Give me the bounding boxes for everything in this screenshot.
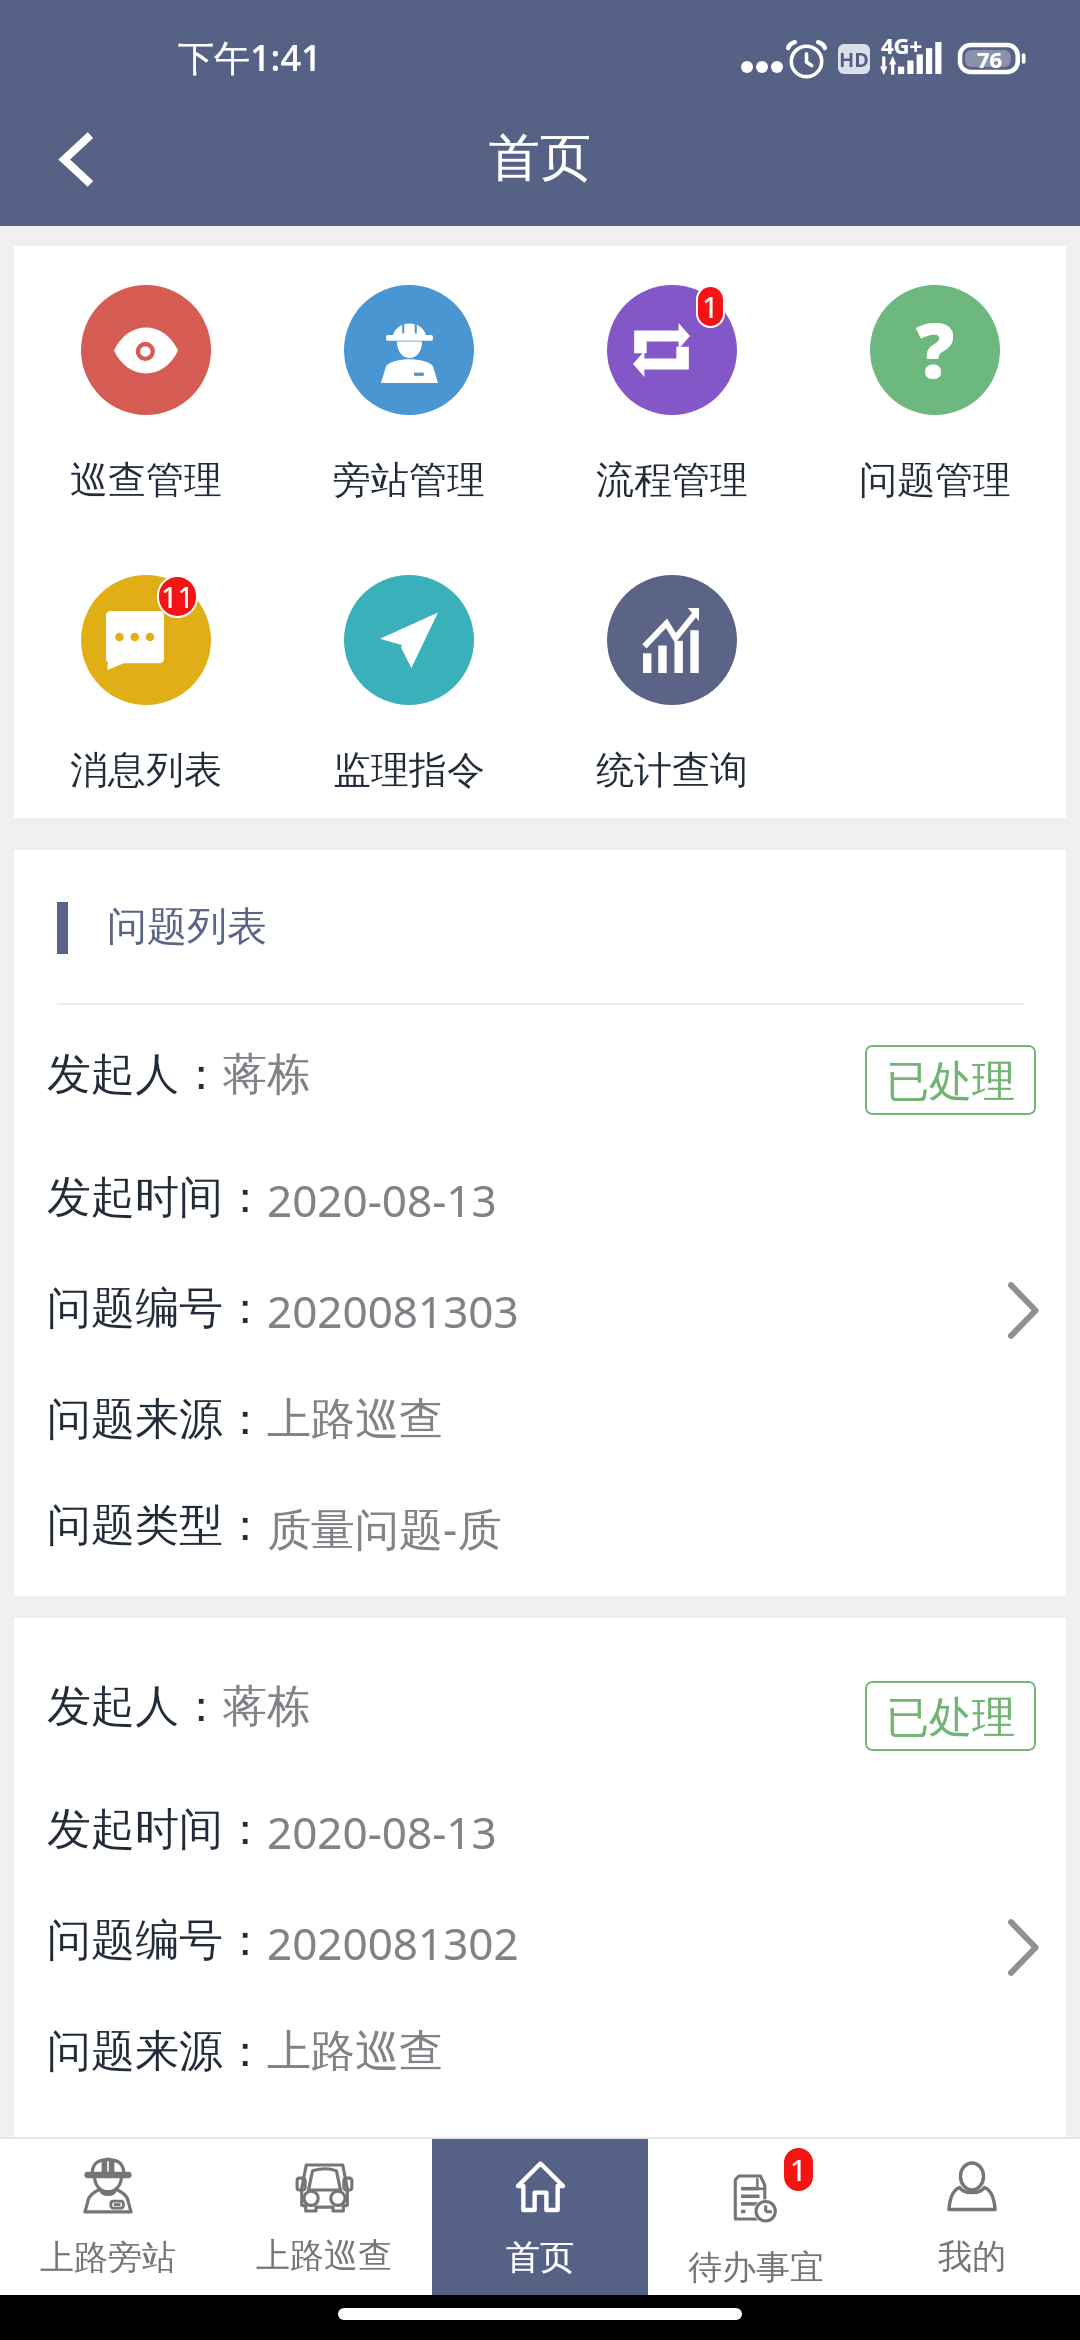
- staticText: 2020081303: [267, 1281, 519, 1341]
- button[interactable]: 上路旁站: [0, 2139, 216, 2295]
- button[interactable]: Back: [31, 113, 123, 205]
- staticText: ?: [916, 297, 955, 401]
- staticText: 发起时间：: [47, 1802, 267, 1857]
- staticText: 蒋栋: [223, 1679, 311, 1734]
- staticText: 发起时间：: [47, 1170, 267, 1225]
- staticText: 2020081302: [267, 1913, 519, 1973]
- button[interactable]: 首页: [432, 2139, 648, 2295]
- staticText: 消息列表: [70, 746, 222, 794]
- staticText: 1: [790, 2150, 807, 2189]
- staticText: 上路巡查: [267, 2024, 443, 2079]
- staticText: 11: [161, 577, 195, 616]
- button[interactable]: 已处理: [865, 1681, 1036, 1751]
- staticText: 2020-08-13: [267, 1170, 497, 1230]
- staticText: 问题列表: [107, 901, 267, 951]
- button[interactable]: 我的: [864, 2139, 1080, 2295]
- staticText: 问题类型：: [47, 1498, 267, 1553]
- staticText: 问题编号：: [47, 1281, 267, 1336]
- button[interactable]: ?: [803, 285, 1066, 504]
- staticText: 监理指令: [333, 746, 485, 794]
- staticText: 旁站管理: [333, 456, 485, 504]
- staticText: 问题管理: [859, 456, 1011, 504]
- staticText: 统计查询: [596, 746, 748, 794]
- staticText: 1: [702, 287, 719, 326]
- staticText: HD: [838, 46, 870, 73]
- staticText: 我的: [938, 2235, 1006, 2278]
- staticText: 首页: [506, 2236, 574, 2279]
- staticText: 发起人：: [47, 1047, 223, 1102]
- staticText: 上路巡查: [256, 2234, 392, 2277]
- staticText: 已处理: [886, 1055, 1015, 1109]
- button[interactable]: 1: [648, 2139, 864, 2295]
- staticText: 上路旁站: [40, 2236, 176, 2279]
- button[interactable]: 统计查询: [540, 575, 803, 794]
- staticText: 76: [977, 44, 1003, 74]
- staticText: 流程管理: [596, 456, 748, 504]
- staticText: 巡查管理: [70, 456, 222, 504]
- button[interactable]: 上路巡查: [216, 2139, 432, 2295]
- staticText: 下午1:41: [178, 33, 322, 82]
- staticText: 4G+: [881, 30, 923, 60]
- button[interactable]: 已处理: [865, 1045, 1036, 1115]
- staticText: 问题编号：: [47, 1913, 267, 1968]
- staticText: 质量问题-质: [267, 1498, 502, 1558]
- staticText: 首页: [489, 126, 591, 190]
- staticText: 2020-08-13: [267, 1802, 497, 1862]
- staticText: 待办事宜: [688, 2246, 824, 2289]
- staticText: 发起人：: [47, 1679, 223, 1734]
- button[interactable]: 监理指令: [277, 575, 540, 794]
- button[interactable]: 1: [540, 285, 803, 504]
- button[interactable]: 巡查管理: [14, 285, 277, 504]
- button[interactable]: 旁站管理: [277, 285, 540, 504]
- staticText: 上路巡查: [267, 1392, 443, 1447]
- staticText: 已处理: [886, 1691, 1015, 1745]
- staticText: 蒋栋: [223, 1047, 311, 1102]
- staticText: 问题来源：: [47, 2024, 267, 2079]
- staticText: 问题来源：: [47, 1392, 267, 1447]
- button[interactable]: 11: [14, 575, 277, 794]
